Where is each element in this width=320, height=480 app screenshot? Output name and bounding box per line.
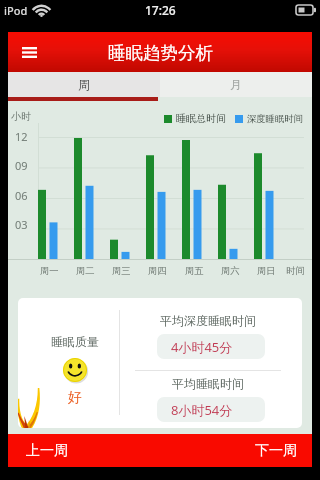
staticText: 好 (68, 389, 82, 407)
staticText: 时间 (286, 265, 305, 277)
button[interactable]: 上一周 (8, 434, 82, 467)
staticText: 下一周 (255, 442, 297, 460)
staticText: 小时 (11, 110, 31, 123)
staticText: 4小时45分 (171, 338, 233, 356)
button[interactable]: Menu (16, 39, 42, 65)
staticText: 06 (15, 188, 28, 203)
staticText: 深度睡眠时间 (247, 113, 303, 125)
staticText: 周 (78, 77, 90, 92)
staticText: 周四 (148, 265, 167, 277)
staticText: 周三 (112, 265, 131, 277)
staticText: 周二 (76, 265, 95, 277)
staticText: 8小时54分 (171, 401, 233, 419)
staticText: 睡眠趋势分析 (108, 42, 213, 64)
staticText: 周五 (185, 265, 204, 277)
staticText: 平均深度睡眠时间 (160, 313, 256, 328)
staticText: iPod (4, 3, 28, 18)
staticText: 09 (15, 158, 28, 173)
staticText: 月 (230, 77, 242, 92)
staticText: 12 (15, 129, 28, 144)
button[interactable]: 4小时45分 (157, 334, 265, 359)
staticText: 睡眠质量 (51, 334, 99, 349)
staticText: 睡眠总时间 (176, 112, 226, 125)
staticText: 上一周 (26, 442, 68, 460)
button[interactable]: 下一周 (241, 434, 312, 467)
staticText: 平均睡眠时间 (172, 376, 244, 391)
button[interactable]: 月 (160, 72, 312, 97)
staticText: 03 (15, 217, 28, 232)
staticText: 周日 (257, 265, 276, 277)
staticText: 17:26 (145, 2, 176, 18)
button[interactable]: 周 (8, 72, 160, 97)
staticText: 周一 (40, 265, 59, 277)
button[interactable]: 8小时54分 (157, 397, 265, 422)
staticText: 周六 (221, 265, 240, 277)
